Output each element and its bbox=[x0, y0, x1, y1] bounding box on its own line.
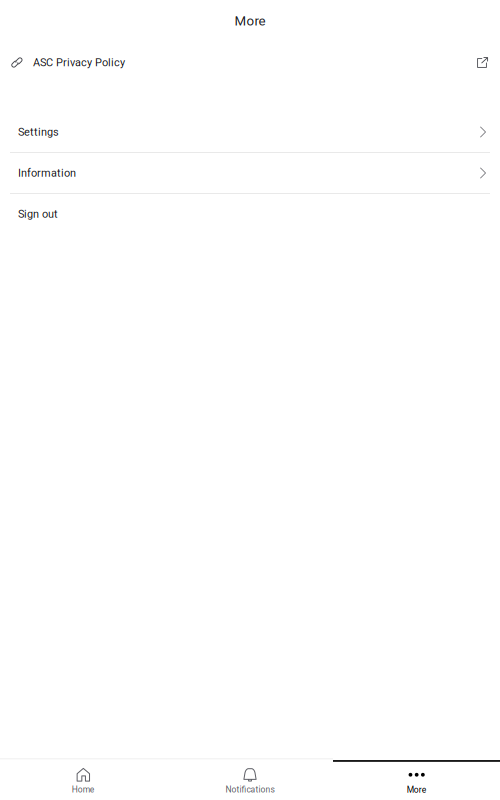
button[interactable]: ASC Privacy Policy bbox=[0, 42, 500, 83]
button[interactable]: More bbox=[333, 759, 500, 800]
button[interactable]: Home bbox=[0, 759, 167, 800]
button[interactable]: Information bbox=[0, 153, 500, 193]
staticText: More bbox=[234, 13, 265, 29]
staticText: Settings bbox=[18, 126, 59, 138]
staticText: Sign out bbox=[18, 208, 58, 220]
staticText: ASC Privacy Policy bbox=[33, 56, 125, 69]
button[interactable]: Settings bbox=[0, 112, 500, 152]
button[interactable]: Sign out bbox=[0, 194, 500, 234]
staticText: More bbox=[407, 785, 427, 795]
button[interactable]: Notifications bbox=[167, 759, 333, 800]
staticText: Notifications bbox=[225, 785, 274, 795]
staticText: Information bbox=[18, 167, 76, 179]
staticText: Home bbox=[72, 785, 95, 795]
